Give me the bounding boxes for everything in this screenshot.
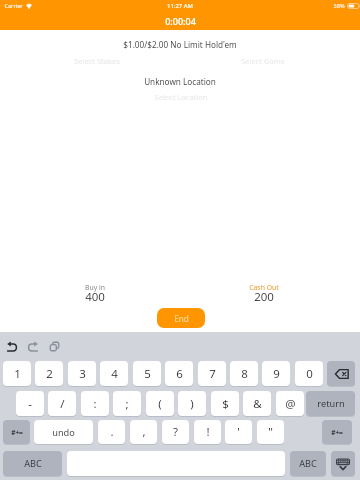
staticText: 6: [176, 366, 183, 382]
button[interactable]: #+=: [322, 420, 352, 444]
button[interactable]: 1: [3, 361, 31, 386]
staticText: .: [110, 424, 114, 440]
button[interactable]: ): [178, 391, 206, 416]
staticText: 5: [144, 366, 151, 382]
button[interactable]: ;: [113, 391, 141, 416]
button[interactable]: Backspace: [327, 361, 355, 386]
staticText: 1: [14, 366, 21, 382]
button[interactable]: ABC: [290, 451, 326, 476]
staticText: ?: [173, 424, 178, 440]
staticText: $: [222, 396, 229, 412]
button[interactable]: (: [146, 391, 174, 416]
button[interactable]: Redo: [22, 335, 44, 357]
staticText: ": [268, 424, 273, 440]
button[interactable]: .: [98, 420, 125, 444]
staticText: ABC: [24, 457, 42, 470]
staticText: ,: [142, 424, 146, 440]
staticText: /: [60, 396, 65, 412]
staticText: 4: [111, 366, 118, 382]
button[interactable]: 2: [35, 361, 63, 386]
staticText: ;: [125, 396, 129, 412]
staticText: 9: [273, 366, 280, 382]
button[interactable]: @: [276, 391, 304, 416]
staticText: 8: [241, 366, 248, 382]
staticText: 400: [0, 289, 195, 305]
button[interactable]: ': [225, 420, 252, 444]
button[interactable]: :: [81, 391, 109, 416]
staticText: 200: [164, 289, 360, 305]
staticText: End: [174, 313, 189, 324]
staticText: Buy in: [0, 283, 195, 292]
staticText: ABC: [299, 457, 317, 470]
staticText: #+=: [11, 428, 23, 437]
staticText: 7: [209, 366, 216, 382]
staticText: Select Stakes: [0, 56, 197, 66]
staticText: Unknown Location: [80, 76, 280, 87]
staticText: ): [190, 396, 194, 412]
button[interactable]: Paste: [43, 335, 65, 357]
button[interactable]: 6: [165, 361, 193, 386]
staticText: :: [93, 396, 97, 412]
button[interactable]: $: [211, 391, 239, 416]
staticText: undo: [52, 426, 75, 439]
staticText: 3: [79, 366, 86, 382]
staticText: 11:27 AM: [167, 2, 193, 10]
button[interactable]: !: [194, 420, 221, 444]
staticText: Cash Out: [164, 283, 360, 292]
staticText: 58%: [333, 2, 345, 10]
staticText: 0:00:04: [165, 15, 196, 27]
button[interactable]: /: [48, 391, 76, 416]
button[interactable]: -: [16, 391, 44, 416]
button[interactable]: 8: [230, 361, 258, 386]
staticText: (: [158, 396, 162, 412]
button[interactable]: return: [306, 391, 355, 416]
staticText: 2: [46, 366, 53, 382]
button[interactable]: &: [243, 391, 271, 416]
staticText: !: [206, 424, 210, 440]
staticText: #+=: [331, 428, 343, 437]
button[interactable]: 3: [68, 361, 96, 386]
button[interactable]: 0: [295, 361, 323, 386]
button[interactable]: Hide keyboard: [331, 451, 355, 476]
button[interactable]: undo: [34, 420, 93, 444]
staticText: @: [285, 396, 296, 412]
button[interactable]: End: [157, 308, 205, 328]
button[interactable]: #+=: [3, 420, 30, 444]
staticText: Select Game: [163, 56, 360, 66]
button[interactable]: ?: [162, 420, 189, 444]
button[interactable]: 4: [100, 361, 128, 386]
staticText: return: [317, 397, 345, 410]
staticText: ': [237, 424, 240, 440]
staticText: 0: [306, 366, 313, 382]
button[interactable]: ABC: [3, 451, 62, 476]
button[interactable]: ,: [130, 420, 157, 444]
button[interactable]: ": [257, 420, 284, 444]
button[interactable]: 5: [133, 361, 161, 386]
staticText: &: [253, 396, 262, 412]
staticText: Carrier: [4, 2, 23, 10]
button[interactable]: 9: [262, 361, 290, 386]
staticText: Select Location: [81, 92, 281, 102]
button[interactable]: Undo: [1, 335, 23, 357]
staticText: -: [28, 396, 32, 412]
button[interactable]: 7: [198, 361, 226, 386]
staticText: $1.00/$2.00 No Limit Hold'em: [80, 39, 280, 50]
